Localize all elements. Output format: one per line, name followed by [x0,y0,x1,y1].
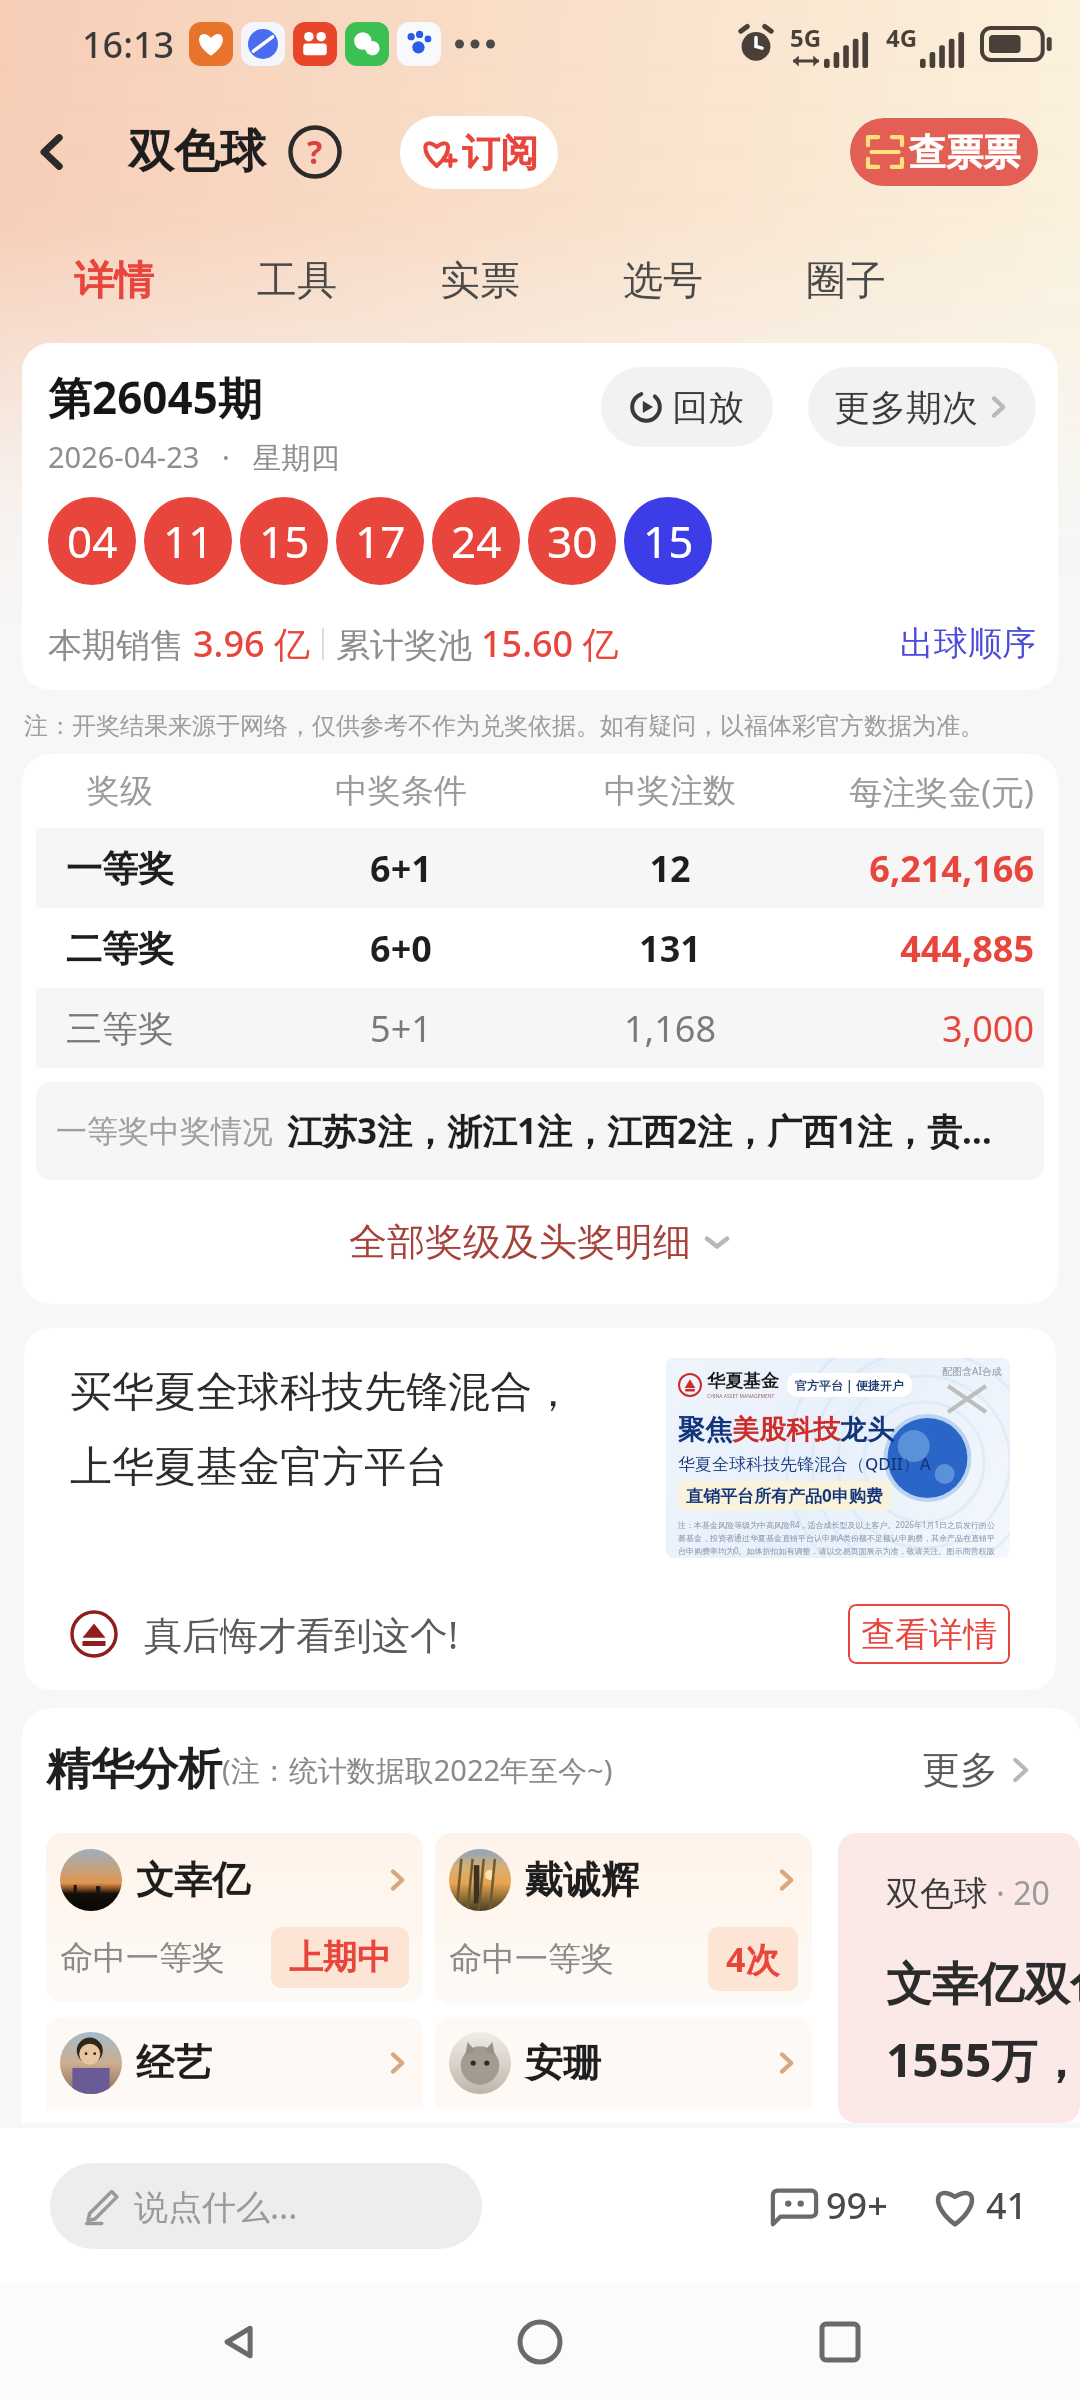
staticText: (注：统计数据取2022年至今~) [222,1750,613,1790]
button[interactable]: 全部奖级及头奖明细 [36,1180,1044,1304]
button[interactable]: Home [480,2283,600,2400]
button[interactable]: 安珊 [435,2017,812,2109]
button[interactable]: 经艺 [46,2017,423,2109]
button[interactable]: 工具 [205,245,388,315]
staticText: CHINA ASSET MANAGEMENT [707,1393,775,1400]
staticText: 注：本基金风险等级为中高风险R4，适合成长型及以上客户。2026年1月1日之后发… [678,1519,998,1558]
button[interactable]: 更多期次 [808,367,1036,447]
staticText: 选号 [623,255,703,305]
button[interactable]: 一等奖中奖情况 [36,1082,1044,1180]
staticText: 华夏基金 [707,1370,779,1393]
button[interactable]: Recents [780,2283,900,2400]
staticText: 详情 [74,255,154,305]
staticText: 131 [598,924,742,973]
staticText: 双色球 [128,123,266,181]
staticText: 本期销售 [48,621,193,667]
staticText: 二等奖 [36,926,204,971]
staticText: 官方平台 | 便捷开户 [795,1377,904,1393]
staticText: 回放 [672,385,744,430]
staticText: 文幸亿 [136,1856,250,1904]
staticText: 工具 [257,255,337,305]
staticText: · 20 [988,1871,1050,1915]
staticText: 江苏3注，浙江1注，江西2注，广西1注，贵… [287,1107,993,1155]
staticText: 中奖注数 [598,770,742,812]
button[interactable]: 选号 [571,245,754,315]
staticText: 美股科技 [732,1413,840,1447]
staticText: 安珊 [525,2039,601,2087]
staticText: 3,000 [742,1004,1034,1053]
staticText: 5+1 [204,1004,598,1053]
staticText: 每注奖金(元) [742,769,1034,814]
staticText: 查看详情 [861,1613,997,1656]
button[interactable]: 订阅 [400,116,558,189]
staticText: 15 [259,511,310,571]
staticText: ? [307,130,323,174]
staticText: 奖级 [36,770,204,812]
staticText: 3.96 亿 [193,619,310,668]
button[interactable]: 买华夏全球科技先锋混合， [24,1328,1056,1690]
staticText: 直销平台所有产品0申购费 [686,1484,883,1507]
staticText: 11 [163,511,214,571]
button[interactable]: 查看详情 [848,1604,1010,1664]
button[interactable]: 双色球 [838,1833,1080,2123]
button[interactable]: 出球顺序 [900,622,1036,665]
button[interactable]: Help [288,125,342,179]
staticText: 444,885 [742,924,1034,973]
button[interactable]: 圈子 [754,245,937,315]
staticText: 戴诚辉 [525,1856,639,1904]
staticText: 5G [790,21,822,54]
staticText: 经艺 [136,2039,212,2087]
staticText: 实票 [440,255,520,305]
button[interactable]: 说点什么... [50,2163,482,2249]
staticText: 三等奖 [36,1006,204,1051]
button[interactable]: 更多 [922,1746,1034,1794]
button[interactable]: 实票 [388,245,571,315]
staticText: 4G [886,21,918,54]
staticText: 第26045期 [48,367,262,427]
button[interactable]: 99+ [762,2173,896,2238]
button[interactable]: 戴诚辉 [435,1833,812,2005]
staticText: 精华分析 [46,1742,222,1797]
staticText: 4次 [726,1936,780,1982]
staticText: 中奖条件 [204,770,598,812]
staticText: 配图含AI合成 [942,1364,1002,1378]
staticText: 04 [67,511,118,571]
button[interactable]: 详情 [22,245,205,315]
staticText: 30 [547,511,598,571]
staticText: 15.60 亿 [481,619,619,668]
staticText: 华夏全球科技先锋混合（QDII）A [678,1452,931,1475]
staticText: 买华夏全球科技先锋混合， [70,1366,574,1419]
staticText: 12 [598,844,742,893]
staticText: 更多 [922,1746,998,1794]
staticText: 订阅 [462,129,538,177]
staticText: 累计奖池 [336,621,481,667]
staticText: 龙头 [840,1413,894,1447]
staticText: 聚焦 [678,1413,732,1447]
staticText: 上期中 [289,1936,391,1979]
staticText: 16:13 [82,20,175,69]
staticText: 上华夏基金官方平台 [70,1441,448,1494]
staticText: 99+ [826,2181,888,2230]
button[interactable]: 查票票 [850,118,1038,186]
button[interactable]: 文幸亿 [46,1833,423,2002]
staticText: 说点什么... [134,2183,298,2229]
button[interactable]: 回放 [601,367,773,447]
staticText: 24 [451,511,502,571]
button[interactable]: Back [0,100,104,204]
staticText: 命中一等奖 [449,1938,614,1980]
staticText: 6,214,166 [742,844,1034,893]
staticText: 真后悔才看到这个! [144,1608,459,1660]
staticText: 注：开奖结果来源于网络，仅供参考不作为兑奖依据。如有疑问，以福体彩官方数据为准。 [24,711,984,741]
button[interactable]: Back [180,2283,300,2400]
staticText: 15 [643,511,694,571]
staticText: 41 [986,2181,1028,2230]
staticText: 圈子 [806,255,886,305]
staticText: 2026-04-23 · 星期四 [48,437,340,477]
staticText: 6+1 [204,844,598,893]
staticText: 1555万，恭喜中奖 [886,2028,1080,2091]
staticText: 一等奖 [36,846,204,891]
staticText: 命中一等奖 [60,1937,225,1979]
staticText: 文幸亿双色球第26045期 [886,1951,1080,2014]
staticText: 17 [355,511,406,571]
button[interactable]: 41 [924,2173,1036,2238]
